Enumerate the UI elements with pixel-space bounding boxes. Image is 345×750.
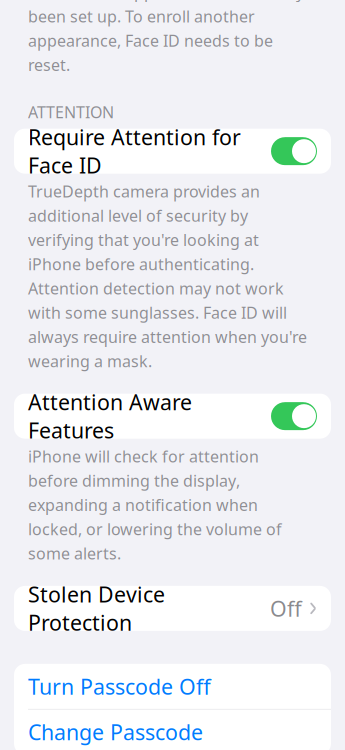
staticText: Off [270,594,302,622]
staticText: Turn Passcode Off [28,672,211,700]
staticText: Stolen Device Protection [28,580,165,637]
button[interactable]: Attention Aware Features [14,394,331,439]
staticText: An alternate appearance has already been… [28,0,304,75]
staticText: Attention Aware Features [28,388,192,444]
button[interactable]: Require Attention for Face ID [14,129,331,174]
staticText: Require Attention for Face ID [28,123,241,179]
button[interactable]: Change Passcode [14,710,331,750]
button[interactable]: Turn Passcode Off [14,664,331,709]
staticText: TrueDepth camera provides an additional … [28,181,307,372]
staticText: Change Passcode [28,718,203,746]
staticText: iPhone will check for attention before d… [28,446,282,564]
staticText: ATTENTION [28,101,114,123]
button[interactable]: Stolen Device Protection [14,586,331,631]
